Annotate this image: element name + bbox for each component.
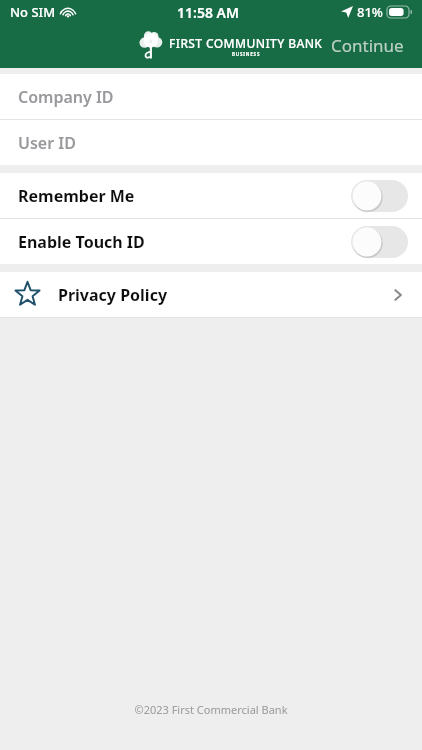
button[interactable]: Company ID: [0, 74, 422, 119]
staticText: Enable Touch ID: [18, 231, 145, 253]
button[interactable]: Remember Me: [0, 173, 422, 218]
staticText: User ID: [18, 132, 76, 154]
other: Open Privacy Policy: [390, 287, 406, 303]
staticText: 81%: [357, 3, 383, 21]
staticText: Remember Me: [18, 185, 135, 207]
staticText: Privacy Policy: [58, 284, 168, 306]
button[interactable]: Continue: [327, 31, 408, 60]
button[interactable]: Privacy Policy: [0, 272, 422, 317]
staticText: FIRST COMMUNITY BANK: [169, 35, 323, 51]
staticText: Continue: [331, 34, 404, 57]
staticText: ©2023 First Commercial Bank: [0, 702, 422, 717]
button[interactable]: User ID: [0, 120, 422, 165]
staticText: BUSINESS: [232, 51, 261, 57]
staticText: 11:58 AM: [177, 3, 239, 22]
staticText: No SIM: [10, 3, 56, 21]
button[interactable]: Enable Touch ID: [0, 219, 422, 264]
staticText: Company ID: [18, 86, 114, 108]
